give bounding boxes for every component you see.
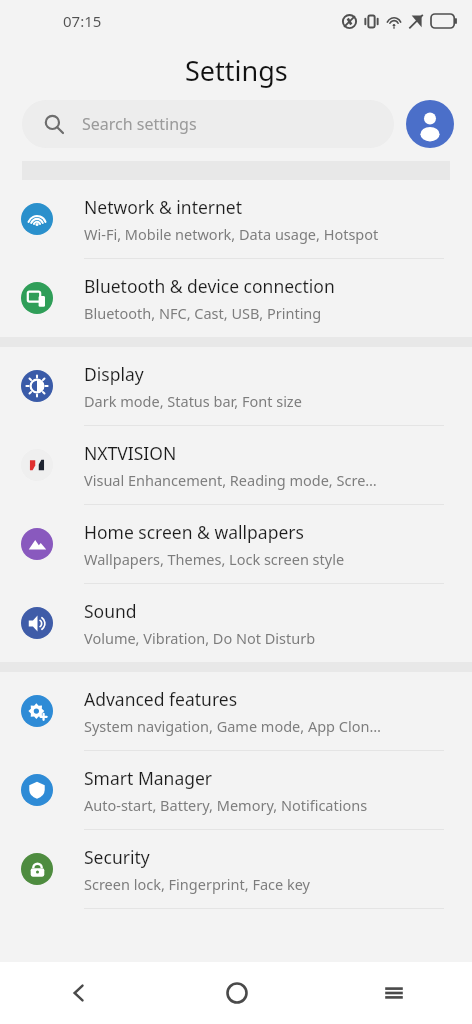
button[interactable]: Home screen & wallpapers xyxy=(0,505,472,584)
button[interactable]: Recents xyxy=(315,962,472,1024)
staticText: Network & internet xyxy=(84,195,243,219)
button[interactable]: Back xyxy=(0,962,158,1024)
staticText: NXTVISION xyxy=(84,441,177,465)
staticText: Settings xyxy=(185,52,288,89)
button[interactable]: Display xyxy=(0,347,472,426)
button[interactable]: Search settings xyxy=(22,100,394,148)
staticText: Volume, Vibration, Do Not Disturb xyxy=(84,628,316,648)
button[interactable]: Account xyxy=(406,100,454,148)
staticText: Smart Manager xyxy=(84,766,213,790)
staticText: Advanced features xyxy=(84,687,238,711)
button[interactable]: Bluetooth & device connection xyxy=(0,259,472,337)
button[interactable]: Home xyxy=(158,962,315,1024)
staticText: Display xyxy=(84,362,144,386)
staticText: Dark mode, Status bar, Font size xyxy=(84,391,302,411)
staticText: Wallpapers, Themes, Lock screen style xyxy=(84,549,345,569)
button[interactable]: Security xyxy=(0,830,472,909)
staticText: Visual Enhancement, Reading mode, Scre… xyxy=(84,470,377,490)
staticText: Home screen & wallpapers xyxy=(84,520,304,544)
button[interactable]: Sound xyxy=(0,584,472,662)
staticText: Sound xyxy=(84,599,137,623)
staticText: Bluetooth, NFC, Cast, USB, Printing xyxy=(84,303,322,323)
staticText: System navigation, Game mode, App Clon… xyxy=(84,716,381,736)
staticText: Search settings xyxy=(82,113,197,135)
staticText: Wi-Fi, Mobile network, Data usage, Hotsp… xyxy=(84,224,379,244)
button[interactable]: Network & internet xyxy=(0,180,472,259)
staticText: Auto-start, Battery, Memory, Notificatio… xyxy=(84,795,368,815)
staticText: Security xyxy=(84,845,150,869)
staticText: Screen lock, Fingerprint, Face key xyxy=(84,874,310,894)
button[interactable]: NXTVISION xyxy=(0,426,472,505)
staticText: Bluetooth & device connection xyxy=(84,274,335,298)
button[interactable]: Advanced features xyxy=(0,672,472,751)
button[interactable]: Smart Manager xyxy=(0,751,472,830)
staticText: 07:15 xyxy=(63,11,102,31)
